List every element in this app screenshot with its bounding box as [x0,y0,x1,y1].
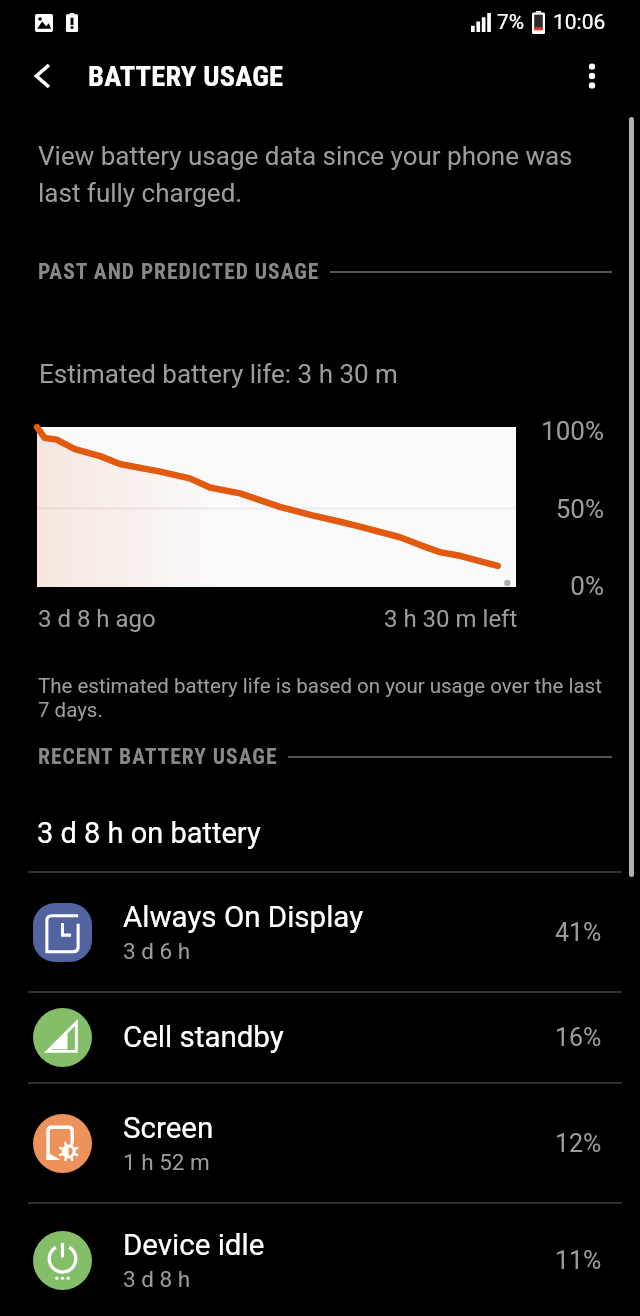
staticText: 3 d 8 h [123,1266,191,1292]
staticText: 12% [555,1129,602,1158]
staticText: View battery usage data since your phone… [38,141,583,208]
staticText: 11% [555,1246,602,1275]
button[interactable]: Always On Display [0,873,640,991]
staticText: BATTERY USAGE [88,60,284,93]
staticText: Always On Display [123,900,364,935]
staticText: 10:06 [553,10,606,35]
staticText: 3 d 8 h ago [38,605,156,633]
staticText: RECENT BATTERY USAGE [38,744,278,769]
staticText: 100% [524,416,604,446]
button[interactable]: Screen [0,1084,640,1202]
button[interactable]: Cell standby [0,993,640,1082]
staticText: PAST AND PREDICTED USAGE [38,259,320,284]
staticText: 3 d 6 h [123,938,191,964]
button[interactable]: Navigate up [18,52,66,100]
staticText: Screen [123,1111,214,1146]
staticText: Estimated battery life: 3 h 30 m [39,359,398,389]
staticText: 3 d 8 h on battery [37,816,261,850]
staticText: 1 h 52 m [123,1149,210,1175]
staticText: 7% [497,10,525,35]
staticText: The estimated battery life is based on y… [38,674,608,722]
staticText: 0% [524,571,604,601]
staticText: 50% [524,494,604,524]
staticText: 41% [555,918,602,947]
staticText: Device idle [123,1228,265,1263]
staticText: Cell standby [123,1020,284,1055]
button[interactable]: More options [568,52,616,100]
staticText: 3 h 30 m left [384,605,518,633]
button[interactable]: Device idle [0,1204,640,1316]
staticText: 16% [555,1023,602,1052]
